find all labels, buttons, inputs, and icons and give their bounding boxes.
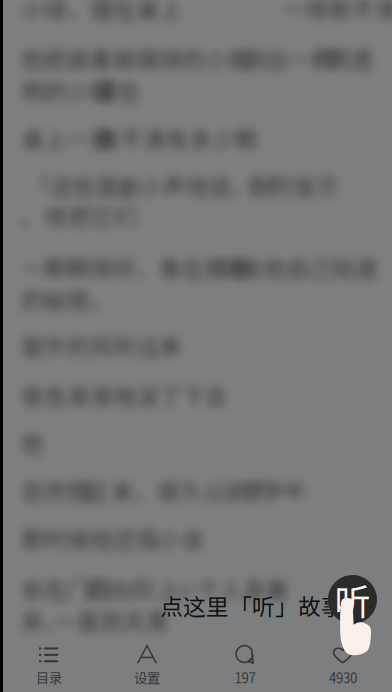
staticText: 目录 xyxy=(36,668,62,687)
staticText: 4930 xyxy=(329,668,357,687)
staticText: 听 xyxy=(334,573,370,625)
button[interactable]: 设置 xyxy=(98,640,196,692)
staticText: 197 xyxy=(234,668,255,687)
button[interactable]: 听故事 xyxy=(328,575,377,624)
button[interactable]: 目录 xyxy=(0,640,98,692)
staticText: 设置 xyxy=(134,668,160,687)
staticText: 点这里「听」故事 xyxy=(160,589,344,622)
button[interactable]: 197 xyxy=(196,640,294,692)
button[interactable]: 4930 xyxy=(294,640,392,692)
